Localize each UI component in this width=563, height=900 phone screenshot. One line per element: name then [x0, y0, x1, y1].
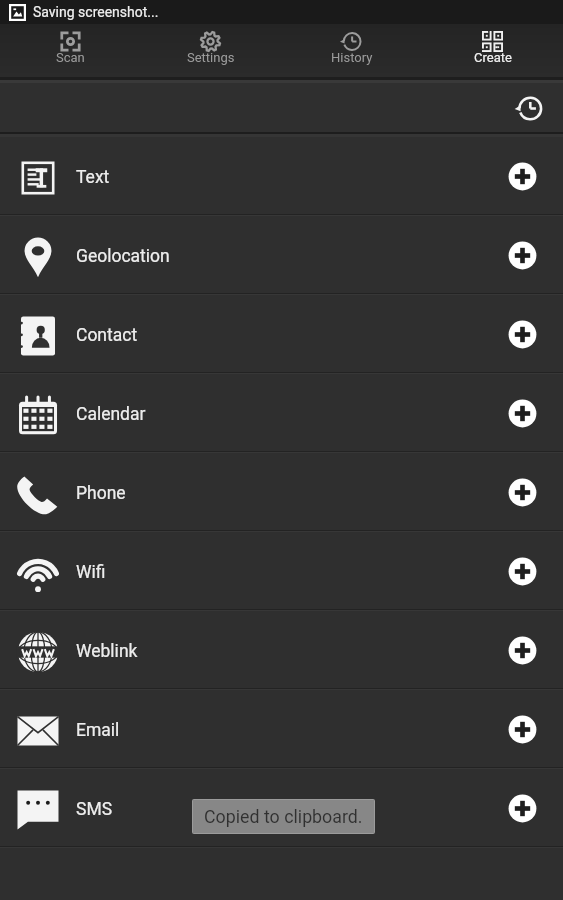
button[interactable]: Add Weblink [498, 626, 546, 674]
button[interactable]: Add Calendar [498, 389, 546, 437]
staticText: Contact [76, 325, 138, 346]
staticText: History [331, 50, 373, 65]
button[interactable]: Wifi [0, 532, 563, 609]
staticText: Phone [76, 483, 126, 504]
staticText: Wifi [76, 562, 106, 583]
button[interactable]: Add Wifi [498, 547, 546, 595]
staticText: Email [76, 720, 120, 741]
button[interactable]: Add Geolocation [498, 231, 546, 279]
button[interactable]: Add Email [498, 705, 546, 753]
button[interactable]: Add Phone [498, 468, 546, 516]
staticText: Text [76, 167, 110, 188]
button[interactable]: SMS [0, 769, 563, 846]
staticText: Scan [56, 50, 85, 65]
button[interactable]: Add SMS [498, 784, 546, 832]
staticText: Copied to clipboard. [204, 806, 363, 827]
staticText: SMS [76, 799, 113, 820]
staticText: Saving screenshot... [33, 4, 159, 20]
button[interactable]: Add Contact [498, 310, 546, 358]
button[interactable]: Calendar [0, 374, 563, 451]
staticText: Settings [187, 50, 235, 65]
button[interactable]: Geolocation [0, 216, 563, 293]
staticText: Weblink [76, 641, 138, 662]
button[interactable]: History [511, 90, 547, 126]
button[interactable]: Scan [0, 24, 140, 77]
button[interactable]: Settings [140, 24, 281, 77]
button[interactable]: Create [422, 24, 563, 77]
button[interactable]: Weblink [0, 611, 563, 688]
staticText: Geolocation [76, 246, 170, 267]
button[interactable]: Text [0, 137, 563, 214]
staticText: Calendar [76, 404, 146, 425]
button[interactable]: Phone [0, 453, 563, 530]
button[interactable]: Add Text [498, 152, 546, 200]
button[interactable]: Email [0, 690, 563, 767]
button[interactable]: Contact [0, 295, 563, 372]
button[interactable]: History [281, 24, 422, 77]
staticText: Create [474, 50, 512, 65]
